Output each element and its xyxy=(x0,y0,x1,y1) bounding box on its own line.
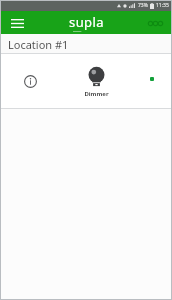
staticText: 11:35 xyxy=(156,2,169,9)
staticText: Dimmer xyxy=(84,90,109,98)
button[interactable]: Channel information xyxy=(0,54,60,109)
button[interactable]: Open navigation menu xyxy=(7,13,27,33)
button[interactable]: Location #1 xyxy=(0,34,172,54)
staticText: 73% xyxy=(138,2,148,9)
button[interactable]: More options xyxy=(144,12,166,34)
staticText: supla xyxy=(69,13,104,31)
staticText: Location #1 xyxy=(8,37,69,52)
button[interactable]: Channel information xyxy=(0,54,172,109)
